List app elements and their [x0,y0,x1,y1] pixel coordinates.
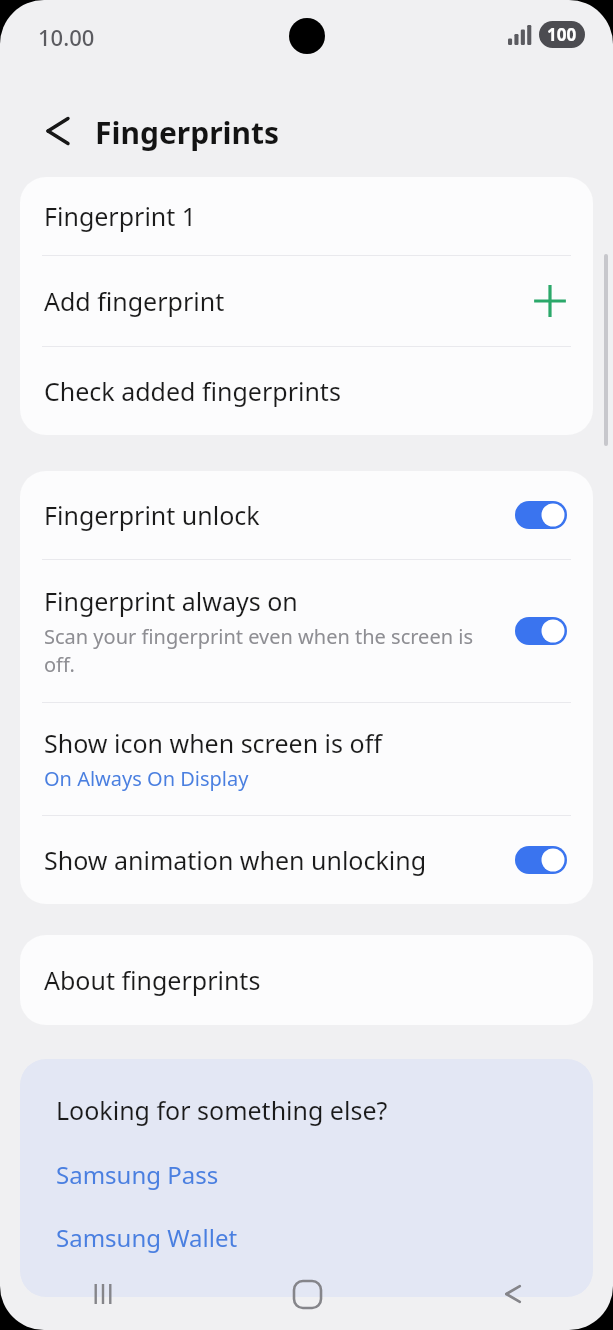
button[interactable]: Fingerprint unlock [20,471,593,559]
staticText: 100 [547,23,577,46]
button[interactable]: About fingerprints [20,935,593,1025]
button[interactable]: Check added fingerprints [20,347,593,435]
button[interactable]: Add fingerprint [533,284,567,318]
button[interactable]: Fingerprint always on [20,560,593,702]
button[interactable]: Samsung Pass [20,1155,593,1194]
button[interactable]: Toggle [515,846,567,874]
staticText: About fingerprints [44,963,261,997]
staticText: Show animation when unlocking [44,843,427,877]
button[interactable]: Fingerprint 1 [20,177,593,255]
staticText: On Always On Display [44,765,249,792]
button[interactable]: Back [32,106,82,156]
button[interactable]: Home [205,1258,409,1330]
button[interactable]: Back [409,1258,613,1330]
staticText: Looking for something else? [56,1093,388,1127]
staticText: Add fingerprint [44,284,225,318]
button[interactable]: Add fingerprint [20,256,593,346]
staticText: Fingerprint 1 [44,199,197,233]
staticText: Show icon when screen is off [44,726,382,760]
staticText: Check added fingerprints [44,374,341,408]
staticText: 10.00 [38,22,95,52]
staticText: Fingerprints [95,112,280,153]
button[interactable]: Show icon when screen is off [20,703,593,815]
button[interactable]: Recent apps [0,1258,205,1330]
button[interactable]: Show animation when unlocking [20,816,593,904]
staticText: Fingerprint unlock [44,498,260,532]
staticText: Scan your fingerprint even when the scre… [44,623,474,678]
staticText: Fingerprint always on [44,584,298,618]
button[interactable]: Samsung Wallet [20,1218,593,1257]
button[interactable]: Toggle [515,501,567,529]
button[interactable]: Toggle [515,617,567,645]
